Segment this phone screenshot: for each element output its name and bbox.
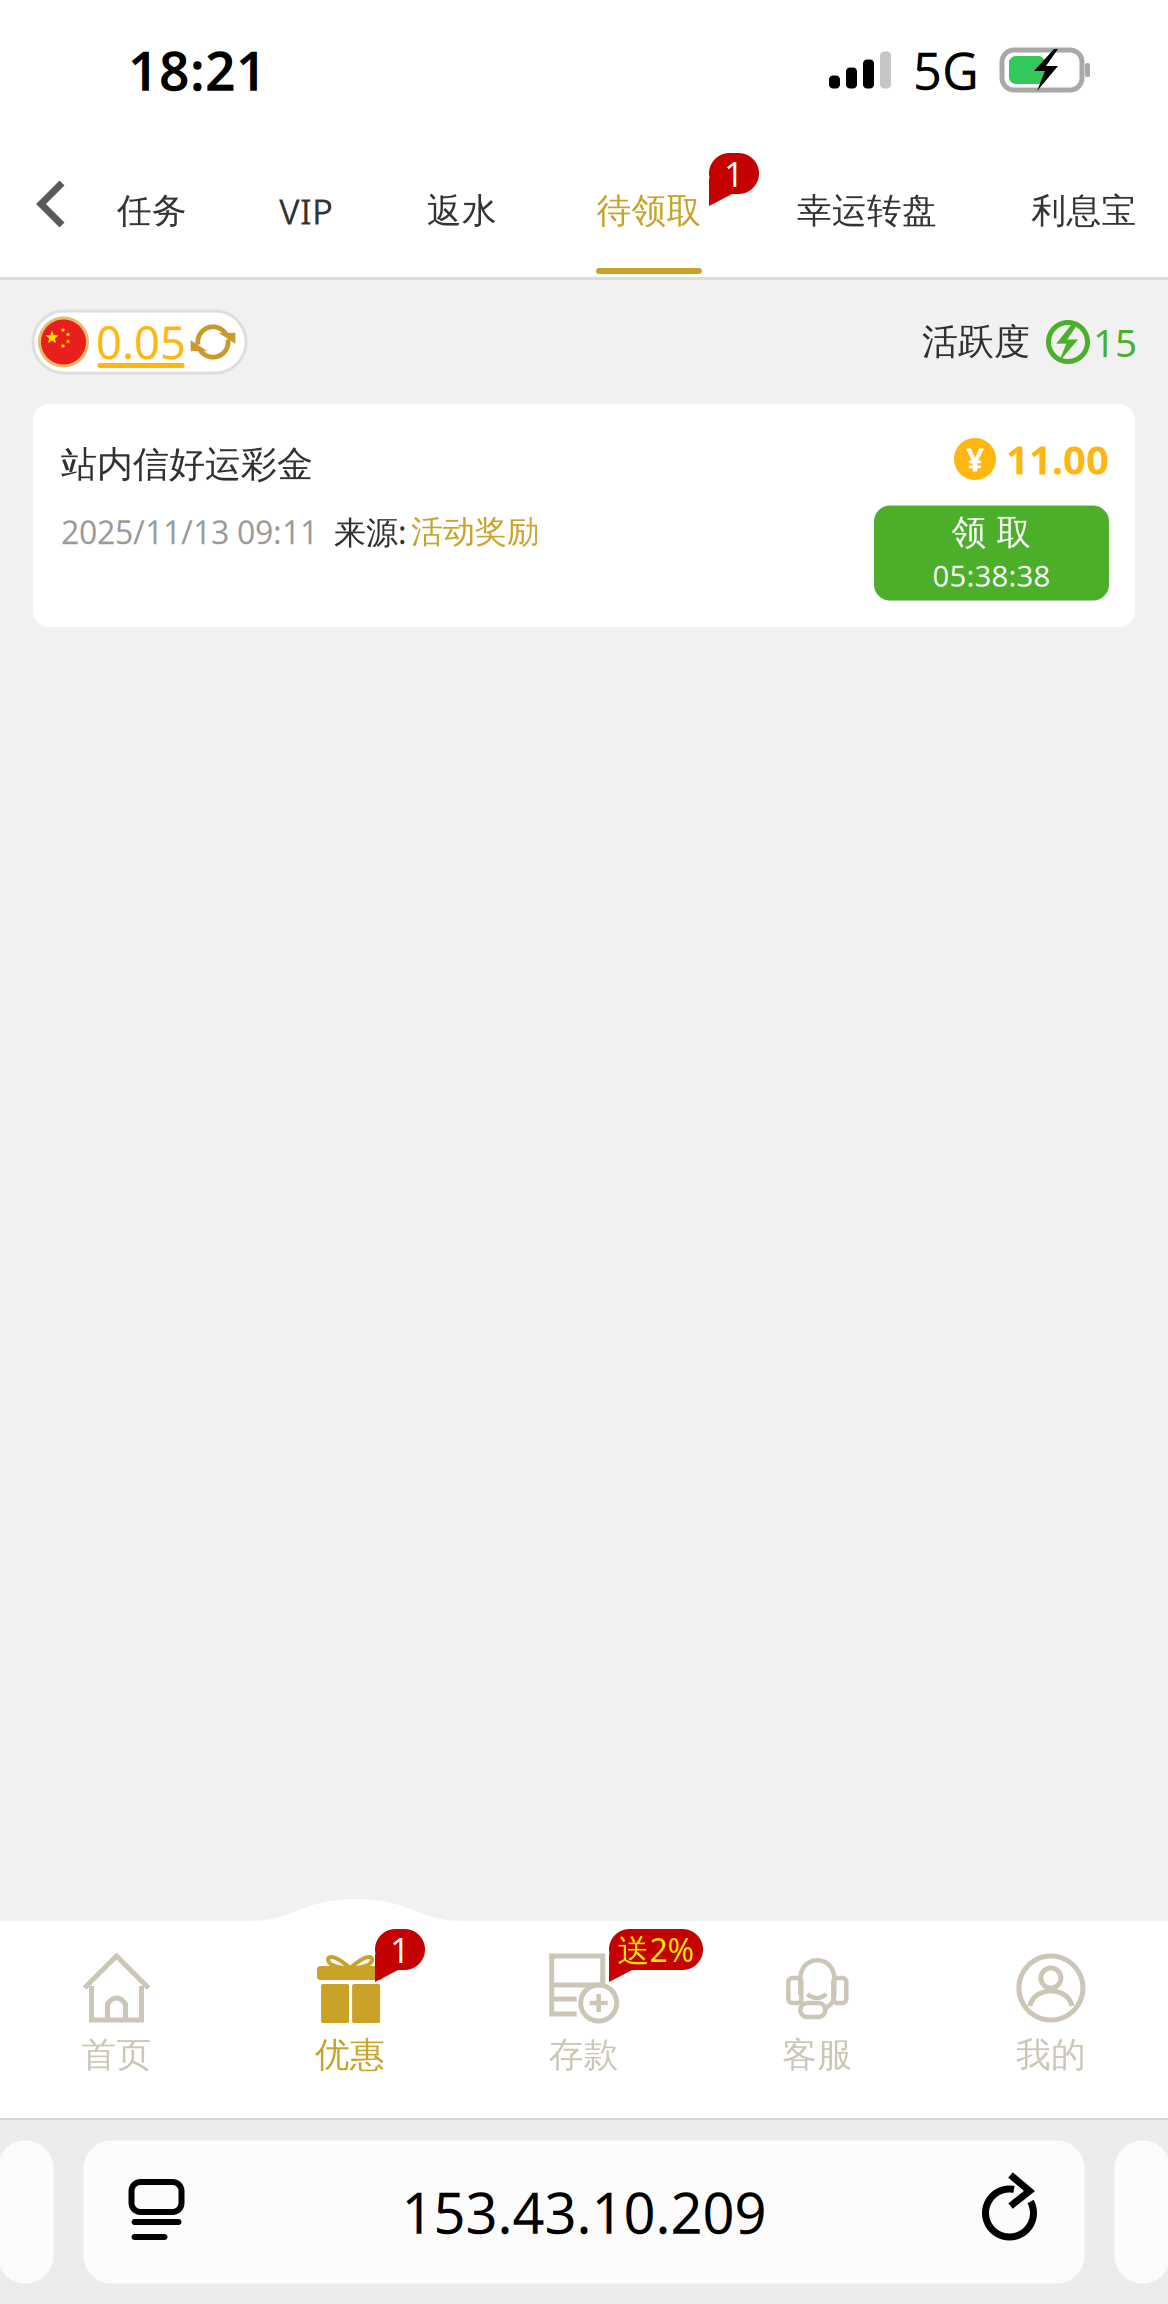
button[interactable]: 我的: [934, 1953, 1167, 2113]
button[interactable]: Back: [18, 180, 88, 230]
staticText: 待领取: [596, 190, 701, 232]
button[interactable]: 客服: [701, 1953, 934, 2113]
staticText: 05:38:38: [932, 556, 1050, 595]
staticText: VIP: [279, 188, 333, 234]
staticText: 优惠: [315, 2034, 385, 2076]
staticText: 我的: [1016, 2034, 1086, 2076]
button[interactable]: VIP: [181, 176, 431, 246]
staticText: 幸运转盘: [797, 190, 937, 232]
staticText: 18:21: [128, 35, 267, 105]
button[interactable]: 领 取: [874, 506, 1109, 601]
staticText: 来源:: [334, 511, 407, 553]
staticText: 1: [724, 150, 744, 196]
staticText: 5G: [913, 36, 979, 104]
staticText: 2025/11/13 09:11: [61, 511, 318, 553]
button[interactable]: 存款: [467, 1953, 700, 2113]
button[interactable]: 首页: [0, 1953, 233, 2113]
staticText: 任务: [117, 190, 187, 232]
button[interactable]: 优惠: [234, 1953, 467, 2113]
button[interactable]: Reader view: [117, 2172, 195, 2252]
staticText: 活跃度: [922, 320, 1030, 364]
button[interactable]: 返水: [337, 176, 587, 246]
staticText: 利息宝: [1031, 190, 1136, 232]
button[interactable]: 利息宝: [959, 176, 1168, 246]
staticText: 活动奖励: [411, 512, 539, 552]
staticText: 站内信好运彩金: [61, 442, 313, 487]
staticText: 领 取: [951, 511, 1031, 554]
staticText: 11.00: [1006, 432, 1109, 485]
button[interactable]: 待领取: [524, 176, 774, 274]
staticText: 返水: [427, 190, 497, 232]
button[interactable]: Reload: [972, 2172, 1050, 2252]
staticText: 1: [390, 1926, 410, 1972]
staticText: 15: [1093, 316, 1137, 368]
button[interactable]: 幸运转盘: [742, 176, 992, 246]
staticText: 153.43.10.209: [401, 2175, 766, 2249]
staticText: 送2%: [617, 1928, 694, 1971]
staticText: 客服: [782, 2034, 852, 2076]
staticText: 存款: [549, 2034, 619, 2076]
button[interactable]: 0.05: [33, 311, 246, 373]
button[interactable]: 任务: [27, 176, 277, 246]
staticText: 0.05: [96, 312, 186, 372]
staticText: 首页: [81, 2034, 151, 2076]
staticText: ¥: [966, 438, 984, 480]
